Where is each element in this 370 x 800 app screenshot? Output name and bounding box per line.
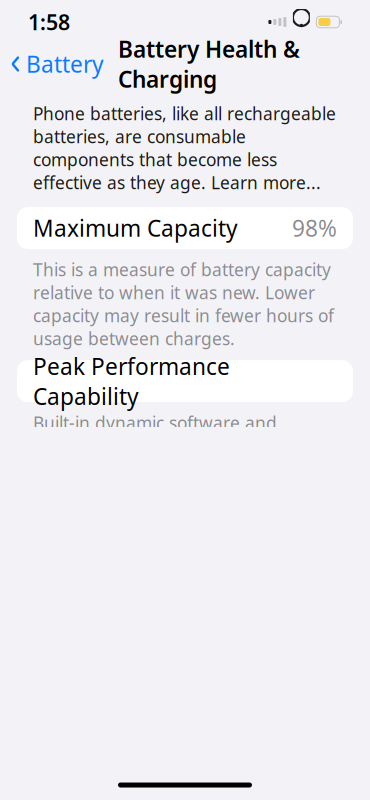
staticText: This is a measure of battery capacity re… [33, 258, 334, 350]
staticText: Battery [26, 49, 104, 79]
staticText: Peak Performance Capability [33, 351, 230, 411]
staticText: Battery Health & Charging [118, 34, 300, 94]
staticText: Phone batteries, like all rechargeable b… [33, 102, 336, 194]
staticText: 98% [292, 213, 337, 243]
button[interactable]: Battery [0, 43, 104, 85]
button[interactable]: Peak Performance Capability [0, 360, 370, 402]
staticText: 1:58 [28, 8, 70, 36]
staticText: Built-in dynamic software and hardware s… [33, 411, 323, 526]
staticText: Maximum Capacity [33, 213, 238, 243]
